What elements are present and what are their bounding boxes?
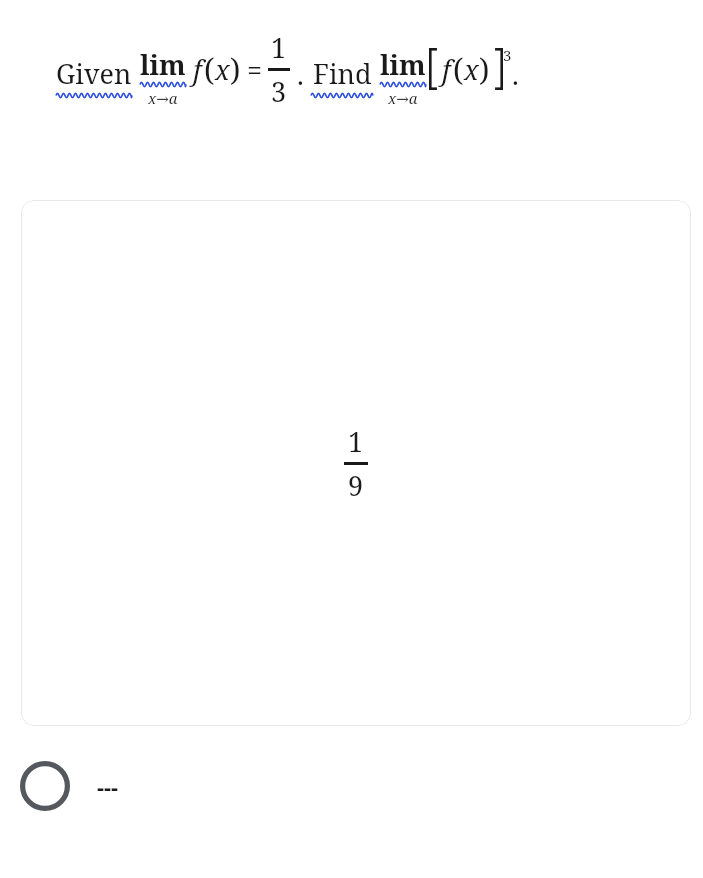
staticText: ) (479, 49, 490, 90)
staticText: --- (97, 771, 119, 801)
staticText: 3 (503, 45, 512, 65)
staticText: lim (380, 46, 426, 83)
staticText: . (297, 56, 304, 93)
staticText: . (512, 56, 519, 93)
staticText: x→a (148, 88, 178, 108)
staticText: 1 (271, 29, 287, 66)
staticText: 1 (348, 423, 364, 460)
staticText: 9 (348, 467, 364, 504)
staticText: lim (140, 46, 186, 83)
staticText: x (464, 51, 479, 88)
staticText: x→a (388, 88, 418, 108)
staticText: ) (230, 49, 241, 90)
staticText: Find (313, 55, 372, 92)
button[interactable]: Select answer option (20, 761, 703, 811)
staticText: x (215, 51, 230, 88)
staticText: = (247, 51, 263, 88)
button[interactable]: 1 (21, 200, 691, 726)
staticText: ( (453, 49, 464, 90)
other: Select answer option (20, 761, 70, 811)
staticText: 3 (271, 73, 287, 110)
staticText: Given (56, 55, 132, 92)
staticText: f (193, 51, 202, 88)
staticText: f (442, 51, 451, 88)
staticText: ( (204, 49, 215, 90)
